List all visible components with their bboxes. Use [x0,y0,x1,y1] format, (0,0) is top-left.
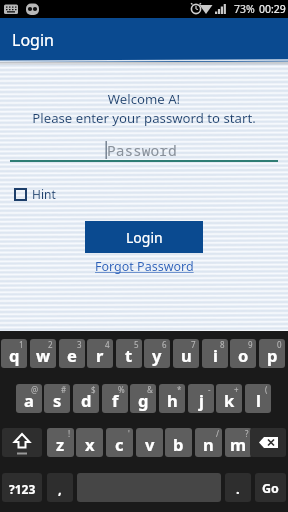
staticText: 9 [248,339,253,350]
staticText: o [238,344,249,366]
button[interactable]: d [73,384,99,413]
button[interactable]: b [165,428,192,457]
staticText: & [147,384,153,395]
button[interactable]: z [47,428,74,457]
button[interactable]: i [202,339,228,368]
staticText: u [181,344,192,366]
staticText: Hint [32,186,56,202]
staticText: ? [245,428,249,439]
staticText: Welcome A! [0,90,288,108]
staticText: Go [262,480,279,497]
staticText: Login [12,29,54,51]
staticText: Password [107,140,177,160]
staticText: . [236,480,240,498]
staticText: r [96,344,104,366]
staticText: 2 [48,339,53,350]
button[interactable] [250,428,286,457]
button[interactable]: o [230,339,256,368]
staticText: 3 [77,339,82,350]
staticText: e [67,344,77,366]
button[interactable]: n [195,428,222,457]
button[interactable]: u [173,339,199,368]
button[interactable]: Hint [14,186,56,202]
button[interactable]: Forgot Password [95,258,194,275]
staticText: ( [265,384,268,395]
button[interactable]: l [245,384,271,413]
staticText: z [56,433,65,455]
staticText: q [9,344,20,366]
button[interactable]: h [159,384,185,413]
button[interactable]: Login [85,221,203,253]
button[interactable]: e [59,339,85,368]
button[interactable]: q [1,339,27,368]
button[interactable]: v [136,428,163,457]
staticText: 0 [277,339,282,350]
staticText: 5 [134,339,139,350]
button[interactable]: p [259,339,285,368]
staticText: m [230,433,247,455]
staticText: @ [31,384,39,395]
staticText: 1 [19,339,24,350]
button[interactable]: x [76,428,103,457]
staticText: 7 [191,339,196,350]
staticText: l [256,389,261,411]
button[interactable]: c [106,428,133,457]
staticText: # [61,384,67,395]
button[interactable]: a [16,384,42,413]
staticText: ' [128,428,130,439]
staticText: / [216,428,219,439]
staticText: s [53,389,62,411]
staticText: Login [126,228,163,247]
staticText: n [203,433,214,455]
button[interactable]: t [116,339,142,368]
staticText: 4 [105,339,110,350]
staticText: t [125,344,133,366]
staticText: 73% [234,2,255,16]
button[interactable]: ?123 [2,473,42,502]
staticText: ?123 [9,481,36,497]
staticText: 6 [162,339,167,350]
button[interactable]: j [188,384,214,413]
button[interactable]: r [87,339,113,368]
button[interactable] [2,428,42,457]
staticText: Please enter your password to start. [0,109,288,127]
button[interactable]: m [225,428,252,457]
staticText: 00:29 [259,2,286,16]
staticText: ! [68,428,71,439]
staticText: * [177,384,182,395]
staticText: % [118,384,125,395]
staticText: + [234,384,239,395]
staticText: w [36,344,51,366]
staticText: i [213,344,218,366]
staticText: y [152,344,162,366]
button[interactable]: , [47,473,73,502]
staticText: - [208,384,211,395]
button[interactable]: g [130,384,156,413]
staticText: $ [91,384,96,395]
staticText: , [58,480,62,498]
staticText: b [173,433,184,455]
staticText: k [224,389,235,411]
button[interactable]: y [144,339,170,368]
button[interactable]: . [225,473,251,502]
button[interactable]: Login [0,18,288,62]
staticText: f [112,389,119,411]
button[interactable]: f [102,384,128,413]
button[interactable]: w [30,339,56,368]
staticText: g [138,389,149,411]
staticText: p [267,344,278,366]
button[interactable]: Go [255,473,286,502]
staticText: 8 [220,339,225,350]
staticText: x [85,433,95,455]
button[interactable]: s [44,384,70,413]
staticText: h [167,389,178,411]
staticText: a [24,389,34,411]
staticText: d [81,389,92,411]
staticText: c [115,433,124,455]
staticText: v [145,433,155,455]
staticText: j [199,389,204,411]
button[interactable]: Password [10,138,278,164]
button[interactable]: k [216,384,242,413]
